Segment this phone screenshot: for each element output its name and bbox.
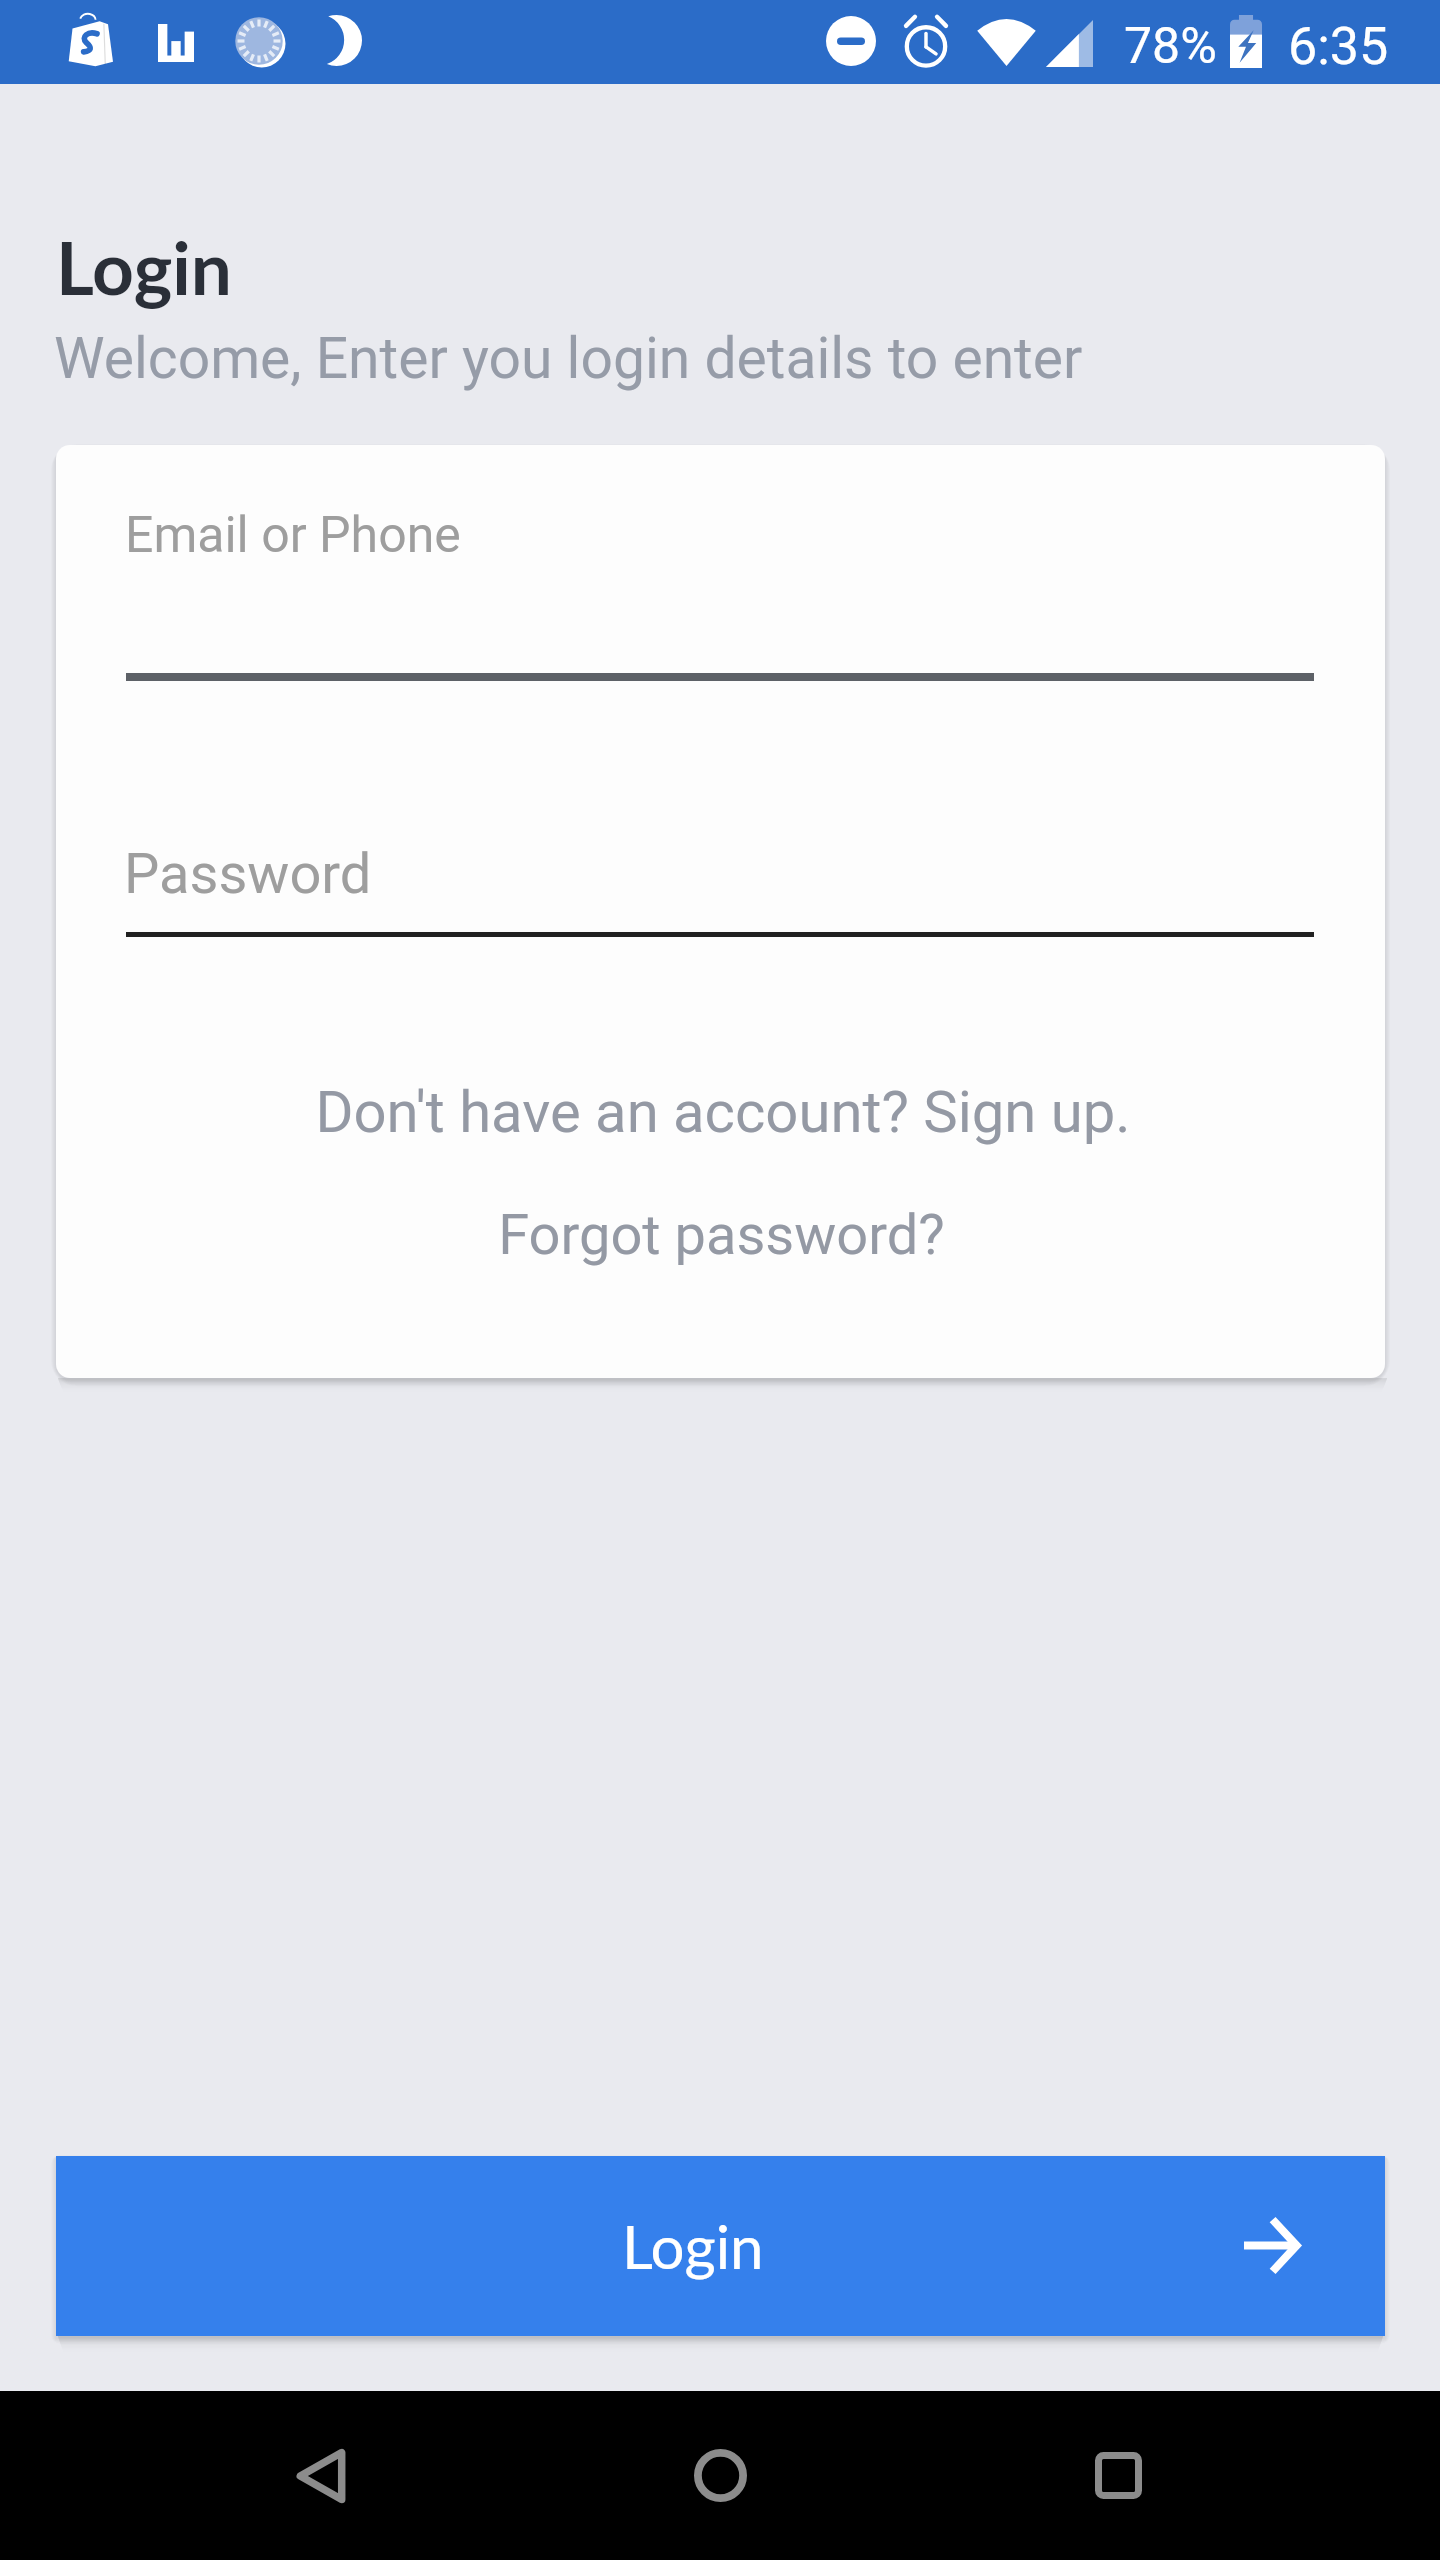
button[interactable]: Home bbox=[660, 2391, 780, 2560]
staticText: Login bbox=[56, 223, 232, 311]
button[interactable]: Recent apps bbox=[1058, 2391, 1178, 2560]
button[interactable]: Login bbox=[56, 2156, 1385, 2336]
staticText: Email or Phone bbox=[125, 506, 461, 565]
staticText: Welcome, Enter you login details to ente… bbox=[54, 325, 1083, 392]
button[interactable]: Back bbox=[261, 2391, 381, 2560]
button[interactable]: Don't have an account? Sign up. bbox=[58, 1064, 1385, 1159]
button[interactable]: Password bbox=[126, 815, 1314, 937]
staticText: Login bbox=[622, 2210, 764, 2282]
staticText: Forgot password? bbox=[498, 1202, 945, 1268]
staticText: 6:35 bbox=[1288, 16, 1389, 77]
staticText: Don't have an account? Sign up. bbox=[315, 1078, 1131, 1146]
button[interactable]: Email or Phone bbox=[126, 485, 1314, 685]
button[interactable]: Forgot password? bbox=[57, 1187, 1385, 1282]
staticText: Password bbox=[124, 841, 372, 907]
staticText: 78% bbox=[1124, 17, 1217, 76]
